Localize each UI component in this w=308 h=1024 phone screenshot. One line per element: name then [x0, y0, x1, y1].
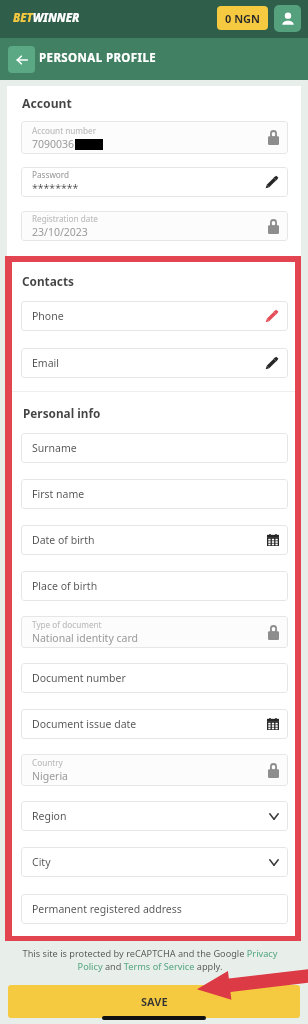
staticText: Date of birth: [32, 533, 95, 547]
staticText: BETWINNER: [13, 10, 80, 26]
staticText: 0 NGN: [225, 11, 261, 26]
staticText: Document issue date: [32, 717, 137, 731]
staticText: Phone: [32, 309, 64, 323]
button[interactable]: Permanent registered address: [21, 894, 288, 924]
button[interactable]: Password: [21, 167, 288, 197]
staticText: Nigeria: [32, 769, 69, 783]
button[interactable]: Document issue date: [21, 709, 288, 739]
button[interactable]: Profile: [274, 5, 301, 32]
button[interactable]: Email: [21, 348, 288, 378]
button[interactable]: Region: [21, 801, 288, 831]
staticText: Surname: [32, 441, 77, 455]
button[interactable]: Type of document: [21, 616, 288, 648]
staticText: City: [32, 855, 51, 869]
button[interactable]: Country: [21, 754, 288, 786]
button[interactable]: City: [21, 847, 288, 877]
button[interactable]: 0 NGN: [217, 6, 268, 30]
staticText: 23/10/2023: [32, 225, 88, 239]
staticText: Contacts: [22, 273, 74, 289]
button[interactable]: Back: [8, 46, 35, 73]
staticText: Place of birth: [32, 579, 98, 593]
button[interactable]: Registration date: [21, 211, 288, 241]
staticText: Region: [32, 809, 67, 823]
staticText: Password: [32, 169, 70, 180]
staticText: First name: [32, 487, 85, 501]
staticText: SAVE: [141, 994, 168, 1009]
button[interactable]: Surname: [21, 433, 288, 463]
staticText: Registration date: [32, 213, 98, 224]
button[interactable]: Document number: [21, 663, 288, 693]
staticText: Account: [22, 95, 72, 112]
staticText: Personal info: [23, 405, 101, 421]
staticText: National identity card: [32, 631, 139, 645]
button[interactable]: First name: [21, 479, 288, 509]
staticText: Type of document: [32, 619, 102, 630]
staticText: Country: [32, 757, 63, 768]
staticText: Document number: [32, 671, 126, 685]
button[interactable]: Date of birth: [21, 525, 288, 555]
staticText: Email: [32, 356, 59, 370]
staticText: ********: [32, 181, 79, 195]
staticText: PERSONAL PROFILE: [39, 50, 157, 66]
staticText: 7090036: [32, 137, 75, 151]
button[interactable]: SAVE: [8, 985, 300, 1018]
staticText: Permanent registered address: [32, 902, 182, 916]
staticText: Account number: [32, 125, 97, 136]
button[interactable]: Account number: [21, 121, 288, 154]
button[interactable]: Place of birth: [21, 571, 288, 601]
staticText: This site is protected by reCAPTCHA and …: [17, 947, 283, 973]
button[interactable]: Phone: [21, 301, 288, 331]
